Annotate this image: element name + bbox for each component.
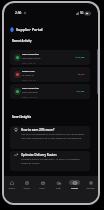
staticText: to Suresh M — [22, 74, 34, 77]
staticText: Home — [8, 187, 15, 190]
staticText: Cash Collected — [22, 86, 39, 89]
button[interactable]: Stock — [34, 180, 50, 190]
button[interactable]: Money — [66, 180, 82, 190]
button[interactable]: Orders — [19, 180, 34, 190]
staticText: Today, 11:00 AM — [22, 96, 37, 99]
staticText: Stock — [39, 187, 45, 190]
staticText: +₹12,500 — [75, 56, 85, 59]
staticText: Money — [71, 187, 78, 190]
button[interactable]: How to earn 20% more? — [10, 126, 90, 149]
button[interactable]: Cash Collected — [10, 84, 90, 99]
staticText: Salary Paid — [22, 69, 35, 72]
staticText: Today, 2:15 PM — [22, 79, 36, 82]
staticText: Assigned drivers are spending 1 hr extra… — [21, 158, 86, 165]
staticText: 2:56 — [15, 11, 22, 15]
staticText: from Amit Singh — [22, 91, 38, 94]
staticText: Supplier Portal — [16, 27, 43, 32]
staticText: Cash Collected — [22, 52, 39, 55]
staticText: Recent Activity — [12, 39, 32, 43]
staticText: Add up to 20 deliveries to your inventor… — [21, 133, 86, 140]
staticText: How to earn 20% more? — [21, 128, 55, 132]
staticText: 5G — [80, 11, 84, 15]
staticText: Fleet — [56, 187, 61, 190]
button[interactable]: Optimize Delivery Routes — [10, 151, 90, 171]
staticText: Smart Insights — [12, 115, 31, 119]
staticText: +₹5,200 — [76, 90, 85, 93]
staticText: Optimize Delivery Routes — [21, 153, 57, 157]
staticText: Orders — [23, 187, 31, 190]
staticText: from Rajesh Kumar — [22, 57, 41, 60]
button[interactable]: Salary Paid — [10, 67, 90, 82]
staticText: Settings — [86, 187, 95, 190]
button[interactable]: Settings — [82, 180, 98, 190]
staticText: -₹8,000 — [77, 73, 85, 76]
staticText: Today, 4:30 PM — [22, 62, 36, 65]
button[interactable]: Cash Collected — [10, 50, 90, 65]
button[interactable]: Home — [4, 180, 19, 190]
button[interactable]: Fleet — [50, 180, 66, 190]
